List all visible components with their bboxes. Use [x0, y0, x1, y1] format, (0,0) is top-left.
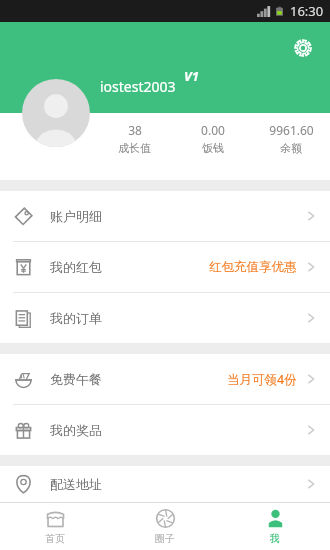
staticText: 免费午餐 [50, 371, 102, 387]
button[interactable]: 我的红包 [0, 242, 330, 293]
staticText: 我的红包 [50, 259, 102, 275]
staticText: 0.00 [201, 122, 225, 138]
button[interactable]: Avatar [22, 79, 90, 147]
staticText: 9961.60 [269, 122, 314, 138]
button[interactable]: 首页 [0, 503, 110, 550]
staticText: iostest2003 [100, 77, 176, 96]
staticText: 首页 [45, 532, 65, 545]
staticText: 账户明细 [50, 208, 102, 224]
button[interactable]: 账户明细 [0, 191, 330, 242]
staticText: 圈子 [155, 532, 175, 545]
button[interactable]: 38 [95, 122, 174, 155]
staticText: 余额 [280, 141, 302, 155]
button[interactable]: 免费午餐 [0, 354, 330, 405]
staticText: 成长值 [118, 141, 151, 155]
staticText: 我 [270, 532, 280, 545]
button[interactable]: 0.00 [174, 122, 252, 155]
staticText: 饭钱 [202, 141, 224, 155]
button[interactable]: 我的奖品 [0, 405, 330, 455]
button[interactable]: 我的订单 [0, 293, 330, 343]
staticText: 38 [128, 122, 142, 138]
staticText: 当月可领4份 [227, 371, 297, 388]
button[interactable]: 配送地址 [0, 466, 330, 502]
staticText: 配送地址 [50, 476, 102, 492]
button[interactable]: 9961.60 [252, 122, 330, 155]
staticText: 16:30 [290, 2, 324, 20]
staticText: V1 [184, 67, 199, 85]
button[interactable]: Settings [288, 33, 318, 63]
staticText: 红包充值享优惠 [209, 259, 297, 275]
staticText: 我的订单 [50, 310, 102, 326]
button[interactable]: 圈子 [110, 503, 220, 550]
staticText: 我的奖品 [50, 422, 102, 438]
button[interactable]: 我 [220, 503, 330, 550]
